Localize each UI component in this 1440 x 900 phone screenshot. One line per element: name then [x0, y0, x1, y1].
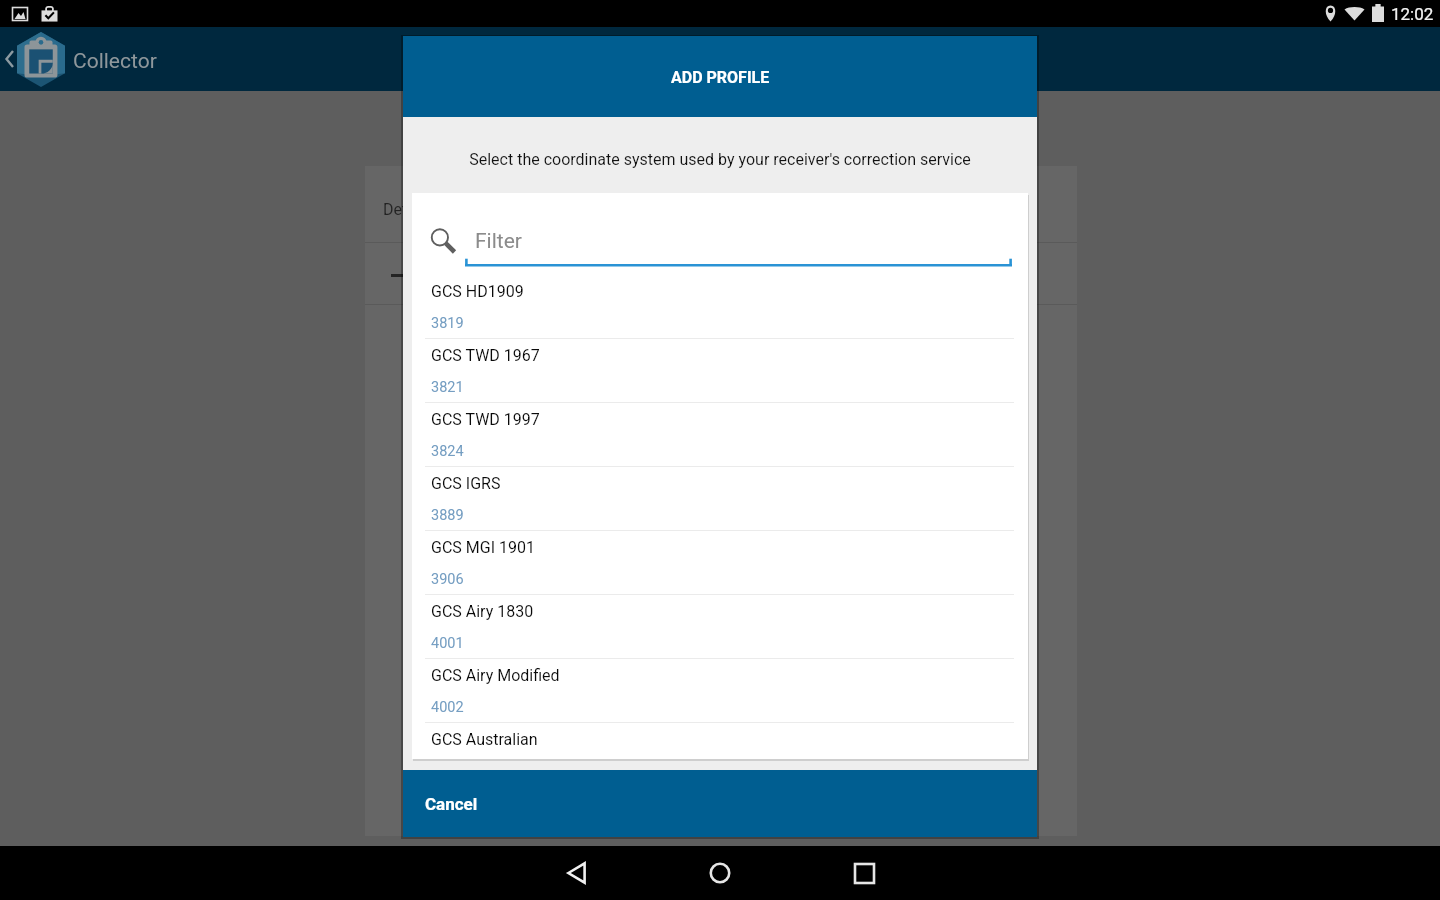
button[interactable]: GCS IGRS: [412, 467, 1028, 531]
button[interactable]: GCS HD1909: [412, 275, 1028, 339]
button[interactable]: GCS Australian: [412, 723, 1028, 759]
staticText: 3819: [431, 315, 464, 332]
button[interactable]: Recent apps: [816, 846, 912, 900]
staticText: 4002: [431, 699, 464, 716]
button[interactable]: GCS Airy Modified: [412, 659, 1028, 723]
staticText: GCS HD1909: [431, 282, 524, 301]
staticText: GCS IGRS: [431, 474, 501, 493]
button[interactable]: Back: [0, 27, 18, 91]
staticText: Select the coordinate system used by you…: [469, 150, 971, 169]
staticText: GCS TWD 1967: [431, 346, 540, 365]
button[interactable]: GCS MGI 1901: [412, 531, 1028, 595]
staticText: ADD PROFILE: [671, 68, 770, 87]
staticText: 3821: [431, 379, 464, 396]
staticText: 3824: [431, 443, 464, 460]
button[interactable]: GCS TWD 1997: [412, 403, 1028, 467]
staticText: GCS TWD 1997: [431, 410, 540, 429]
staticText: 4001: [431, 635, 464, 652]
staticText: GCS Airy 1830: [431, 602, 534, 621]
button[interactable]: Back: [528, 846, 624, 900]
staticText: 12:02: [1391, 4, 1434, 24]
staticText: GCS Australian: [431, 730, 538, 749]
staticText: 3906: [431, 571, 464, 588]
button[interactable]: GCS TWD 1967: [412, 339, 1028, 403]
staticText: Cancel: [425, 794, 478, 814]
staticText: GCS MGI 1901: [431, 538, 535, 557]
staticText: Details: [383, 200, 432, 219]
button[interactable]: Filter coordinate systems: [412, 193, 1028, 275]
button[interactable]: Cancel: [403, 770, 1037, 837]
button[interactable]: Home: [672, 846, 768, 900]
button[interactable]: GCS Airy 1830: [412, 595, 1028, 659]
staticText: Filter: [475, 229, 522, 254]
staticText: 3889: [431, 507, 464, 524]
staticText: GCS Airy Modified: [431, 666, 560, 685]
staticText: Collector: [73, 49, 157, 74]
